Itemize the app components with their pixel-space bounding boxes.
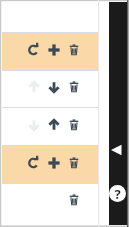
button[interactable] (2, 0, 99, 32)
button[interactable]: Delete (67, 43, 81, 57)
button[interactable] (2, 70, 99, 108)
button[interactable]: Delete (67, 193, 81, 207)
button[interactable]: Move down (47, 80, 61, 94)
button[interactable]: Help (109, 185, 126, 202)
button[interactable]: Delete (67, 80, 81, 94)
button[interactable]: Rotate (27, 43, 41, 57)
button[interactable] (2, 107, 99, 145)
button[interactable] (2, 32, 99, 70)
button[interactable]: Move up (47, 118, 61, 132)
button[interactable]: Collapse panel (109, 142, 127, 158)
button[interactable]: Move down (27, 118, 41, 132)
button[interactable]: Delete (67, 156, 81, 170)
button[interactable]: Add (47, 43, 61, 57)
button[interactable]: Rotate (27, 156, 41, 170)
button[interactable]: Move up (27, 80, 41, 94)
button[interactable] (2, 145, 99, 183)
button[interactable]: Add (47, 156, 61, 170)
staticText: ? (114, 185, 121, 202)
button[interactable] (2, 183, 99, 227)
button[interactable]: Delete (67, 118, 81, 132)
